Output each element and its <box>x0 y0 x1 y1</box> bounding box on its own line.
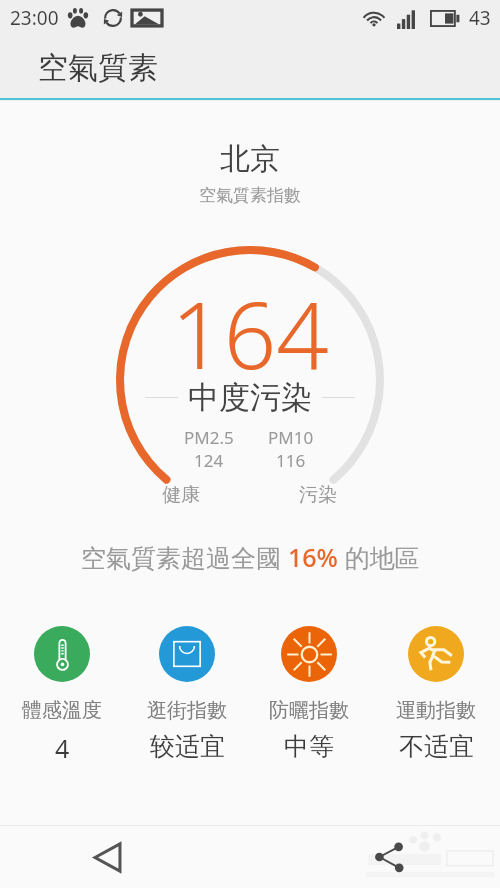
staticText: 體感溫度 <box>22 698 102 723</box>
button[interactable]: 體感溫度 <box>6 620 118 765</box>
staticText: 中等 <box>284 731 334 762</box>
staticText: 23:00 <box>10 5 59 31</box>
staticText: 不适宜 <box>399 731 474 762</box>
button[interactable]: 運動指數 <box>380 620 492 762</box>
staticText: 健康 <box>162 483 200 507</box>
staticText: 116 <box>276 449 306 472</box>
staticText: 较适宜 <box>150 731 225 762</box>
staticText: 中度污染 <box>188 378 312 417</box>
staticText: 污染 <box>299 483 337 507</box>
staticText: 4 <box>55 731 70 765</box>
staticText: 164 <box>0 271 500 396</box>
button[interactable]: Back <box>83 833 131 881</box>
staticText: PM2.5 <box>184 426 234 449</box>
button[interactable]: Share <box>365 833 413 881</box>
staticText: 43 <box>469 5 491 31</box>
staticText: 運動指數 <box>396 698 476 723</box>
staticText: 124 <box>194 449 224 472</box>
button[interactable]: 防曬指數 <box>253 620 365 762</box>
staticText: 空氣質素指數 <box>0 185 500 206</box>
staticText: 北京 <box>0 140 500 178</box>
staticText: 防曬指數 <box>269 698 349 723</box>
staticText: PM10 <box>268 426 314 449</box>
staticText: 16% <box>288 540 338 574</box>
staticText: 的地區 <box>338 540 420 574</box>
staticText: 逛街指數 <box>147 698 227 723</box>
button[interactable]: 逛街指數 <box>131 620 243 762</box>
staticText: 空氣質素 <box>38 49 158 87</box>
staticText: 空氣質素超過全國 <box>81 540 288 574</box>
